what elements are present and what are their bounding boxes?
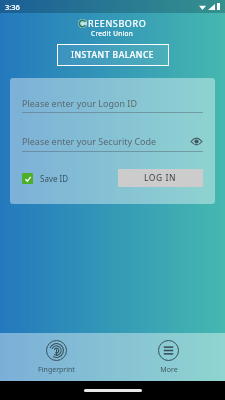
button[interactable]: More [112,333,225,381]
staticText: Please enter your Logon ID [22,97,203,109]
staticText: Credit Union [91,29,134,38]
staticText: Fingerprint [38,365,75,375]
button[interactable]: INSTANT BALANCE [57,44,169,66]
button[interactable]: Please enter your Security Code [22,134,203,152]
button[interactable]: Fingerprint [0,333,112,381]
button[interactable]: Please enter your Logon ID [22,97,203,113]
staticText: REENSBORO [88,17,147,29]
button[interactable]: LOG IN [118,169,203,187]
staticText: LOG IN [144,172,177,184]
staticText: Please enter your Security Code [22,135,189,147]
staticText: INSTANT BALANCE [71,49,155,61]
button[interactable]: Save ID [22,173,69,184]
staticText: Save ID [40,173,69,184]
staticText: More [160,365,178,375]
staticText: 3:36 [5,2,20,12]
button[interactable]: Show password [189,134,203,148]
